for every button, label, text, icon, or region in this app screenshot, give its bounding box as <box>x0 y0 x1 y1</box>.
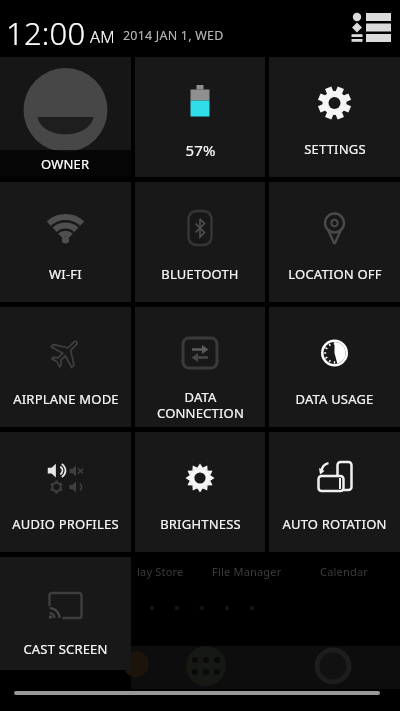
button[interactable]: BLUETOOTH <box>135 182 265 302</box>
staticText: File Manager <box>212 564 282 579</box>
staticText: LOCATION OFF <box>288 265 382 283</box>
staticText: SETTINGS <box>304 140 366 158</box>
button[interactable]: CAST SCREEN <box>0 557 131 670</box>
staticText: BRIGHTNESS <box>160 515 241 533</box>
staticText: DATA CONNECTION <box>157 388 244 421</box>
button[interactable]: BRIGHTNESS <box>135 432 265 552</box>
staticText: 2014 JAN 1, WED <box>123 27 224 44</box>
button[interactable]: 57% <box>135 57 265 177</box>
button[interactable]: AUDIO PROFILES <box>0 432 131 552</box>
staticText: BLUETOOTH <box>161 265 239 283</box>
staticText: Calendar <box>320 564 369 579</box>
button[interactable]: SETTINGS <box>269 57 400 177</box>
button[interactable]: AIRPLANE MODE <box>0 307 131 427</box>
staticText: DATA USAGE <box>295 390 374 408</box>
staticText: AUTO ROTATION <box>282 515 387 533</box>
staticText: WI-FI <box>49 265 82 283</box>
staticText: AUDIO PROFILES <box>12 515 119 533</box>
button[interactable]: LOCATION OFF <box>269 182 400 302</box>
button[interactable] <box>348 10 394 46</box>
button[interactable]: DATA CONNECTION <box>135 307 265 427</box>
staticText: 57% <box>185 140 216 160</box>
button[interactable]: DATA USAGE <box>269 307 400 427</box>
button[interactable]: WI-FI <box>0 182 131 302</box>
staticText: AIRPLANE MODE <box>13 390 119 408</box>
staticText: 12:00 <box>6 12 86 54</box>
staticText: AM <box>90 25 115 47</box>
button[interactable]: AUTO ROTATION <box>269 432 400 552</box>
staticText: OWNER <box>41 155 90 173</box>
staticText: CAST SCREEN <box>23 640 108 658</box>
button[interactable]: OWNER <box>0 57 131 177</box>
staticText: lay Store <box>137 564 184 579</box>
